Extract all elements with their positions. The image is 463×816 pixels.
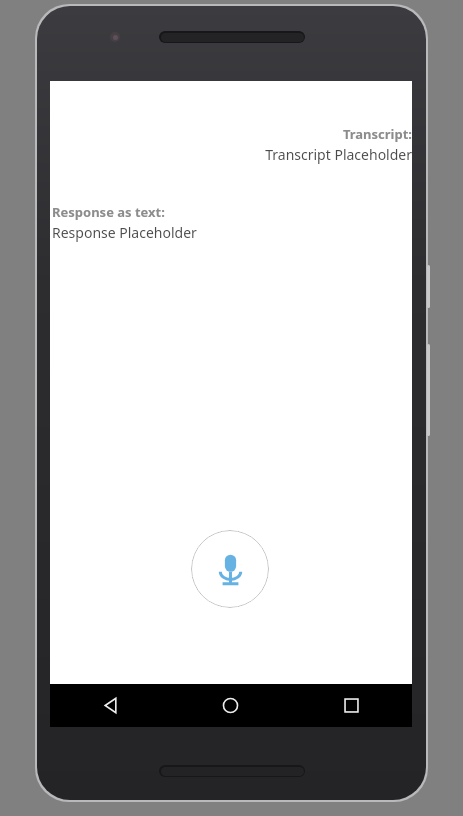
button[interactable]: Home: [170, 684, 291, 727]
button[interactable]: Back: [50, 684, 170, 727]
staticText: Transcript:: [50, 125, 412, 143]
staticText: Response as text:: [52, 203, 165, 221]
button[interactable]: Start voice input: [191, 530, 269, 608]
staticText: Transcript Placeholder: [50, 145, 412, 164]
button[interactable]: Recents: [291, 684, 412, 727]
staticText: Response Placeholder: [52, 223, 197, 242]
